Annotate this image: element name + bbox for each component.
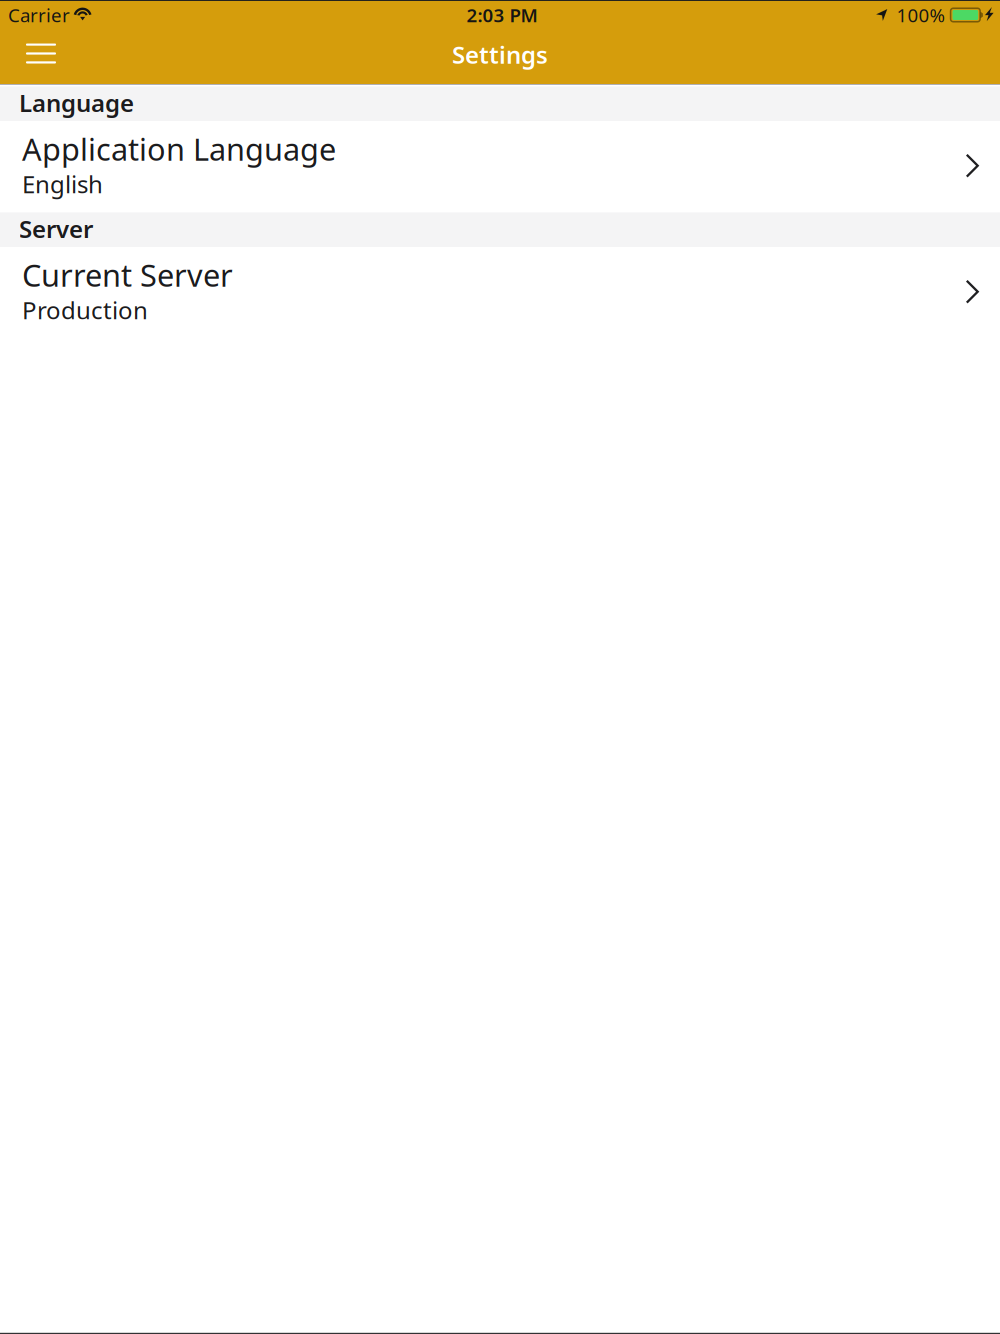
staticText: Settings <box>452 39 548 70</box>
staticText: 2:03 PM <box>466 3 537 27</box>
staticText: Carrier <box>8 3 70 27</box>
staticText: Application Language <box>22 128 336 169</box>
staticText: Production <box>22 294 148 326</box>
staticText: 100% <box>897 3 946 27</box>
staticText: Language <box>19 87 134 119</box>
staticText: English <box>22 168 103 200</box>
staticText: Current Server <box>22 254 233 295</box>
button[interactable]: Application Language <box>0 121 1000 212</box>
button[interactable]: Current Server <box>0 247 1000 338</box>
button[interactable]: Menu <box>0 29 78 84</box>
staticText: Server <box>19 213 93 245</box>
